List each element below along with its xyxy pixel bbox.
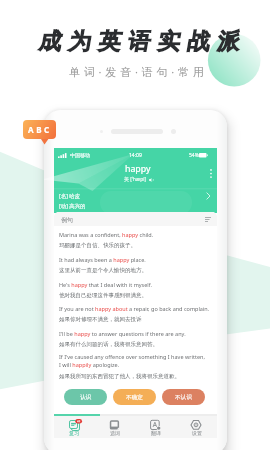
button[interactable]: 复习 [54, 416, 94, 438]
button[interactable]: 选词 [94, 416, 135, 438]
staticText: 14:09 [129, 152, 142, 159]
staticText: 如果有什么问题的话，我将很乐意回答。 [59, 341, 158, 348]
staticText: happy [125, 163, 151, 175]
staticText: Marina was a confident, happy child. [59, 231, 154, 238]
staticText: If I've caused any offence over somethin… [59, 353, 205, 369]
button[interactable]: 不确定 [113, 389, 156, 405]
staticText: 复习 [69, 430, 79, 436]
staticText: He's happy that I deal with it myself. [59, 281, 152, 288]
staticText: 这里从前一直是个令人愉快的地方。 [59, 267, 147, 274]
button[interactable]: 翻译 [135, 416, 176, 438]
staticText: 设置 [192, 430, 202, 436]
staticText: 中国移动 [70, 152, 90, 158]
staticText: 成为英语实战派 [37, 27, 245, 55]
button[interactable]: More options [204, 167, 217, 180]
staticText: 如果你对修理不满意，就回去投诉 [59, 316, 142, 323]
staticText: I'll be happy to answer questions if the… [59, 330, 186, 337]
staticText: 翻译 [151, 430, 161, 436]
button[interactable]: [名] 哈皮 [54, 189, 217, 212]
staticText: 不认识 [175, 394, 192, 401]
staticText: It had always been a happy place. [59, 256, 146, 263]
staticText: 54% [189, 152, 199, 159]
staticText: 例句 [61, 216, 73, 224]
other: Sort [205, 217, 211, 222]
staticText: 他对我自己处理这件事感到很满意。 [59, 292, 147, 299]
staticText: 不确定 [126, 394, 143, 401]
button[interactable]: 认识 [64, 389, 107, 405]
staticText: 认识 [80, 394, 92, 401]
staticText: 单词·发音·语句·常用 [69, 64, 208, 79]
button[interactable]: 设置 [176, 416, 217, 438]
staticText: [名] 哈皮 [59, 192, 81, 199]
staticText: 玛丽娜是个自信、快乐的孩子。 [59, 242, 136, 249]
staticText: 如果我所写的东西冒犯了他人，我将很乐意道歉。 [59, 373, 180, 380]
button[interactable]: 不认识 [162, 389, 205, 405]
staticText: 选词 [110, 430, 120, 436]
staticText: [动] 高兴的 [59, 202, 86, 209]
staticText: 美 [ˈhæpi] [124, 176, 147, 183]
staticText: ABC [28, 124, 52, 135]
staticText: If you are not happy about a repair, go … [59, 305, 210, 312]
